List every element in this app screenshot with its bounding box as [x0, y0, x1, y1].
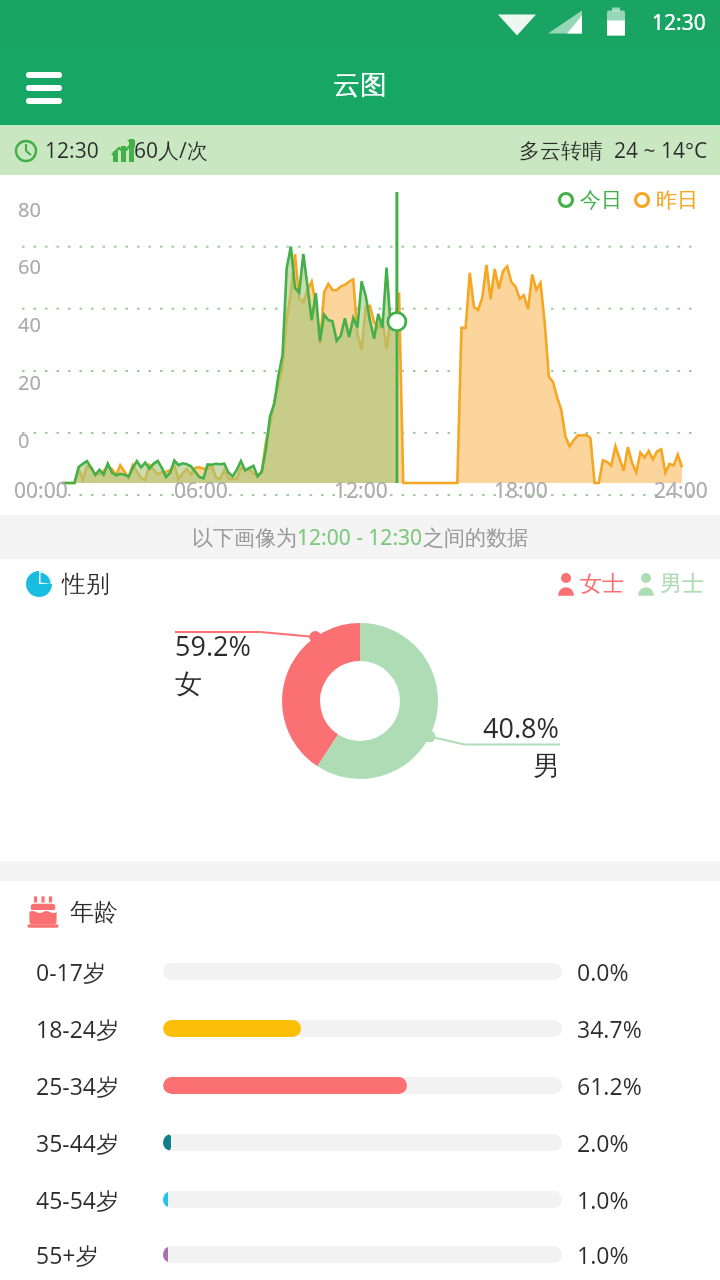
button[interactable]: 55+岁	[0, 1228, 720, 1280]
staticText: 55+岁	[36, 1239, 99, 1270]
staticText: 女士	[580, 570, 624, 598]
staticText: 2.0%	[577, 1127, 629, 1158]
button[interactable]: 今日	[558, 187, 698, 213]
staticText: 06:00	[174, 476, 228, 505]
staticText: 00:00	[14, 476, 68, 505]
staticText: 80	[18, 196, 41, 223]
staticText: 60人/次	[134, 136, 208, 165]
staticText: 61.2%	[577, 1070, 642, 1101]
staticText: 年龄	[70, 897, 118, 927]
staticText: 40	[18, 311, 41, 338]
staticText: 1.0%	[577, 1239, 629, 1270]
staticText: 女	[175, 667, 202, 701]
button[interactable]: 18-24岁	[0, 1000, 720, 1057]
staticText: 多云转晴 24 ~ 14°C	[519, 136, 708, 165]
staticText: 20	[18, 369, 41, 396]
staticText: 18:00	[494, 476, 548, 505]
staticText: 12:00	[334, 476, 388, 505]
staticText: 性别	[62, 569, 110, 599]
button[interactable]: 45-54岁	[0, 1171, 720, 1228]
button[interactable]: 35-44岁	[0, 1114, 720, 1171]
staticText: 12:30	[652, 8, 706, 37]
staticText: 40.8%	[483, 709, 560, 746]
staticText: 男	[533, 749, 560, 783]
staticText: 60	[18, 253, 41, 280]
staticText: 25-34岁	[36, 1070, 120, 1101]
staticText: 0	[18, 427, 30, 454]
staticText: 云图	[333, 68, 387, 102]
staticText: 之间的数据	[423, 525, 528, 551]
button[interactable]: Menu	[24, 59, 76, 111]
button[interactable]: 女士	[554, 570, 704, 598]
staticText: 今日	[580, 187, 622, 213]
button[interactable]: 0-17岁	[0, 943, 720, 1000]
staticText: 男士	[660, 570, 704, 598]
staticText: 1.0%	[577, 1184, 629, 1215]
staticText: 12:30	[45, 136, 99, 165]
staticText: 18-24岁	[36, 1013, 120, 1044]
staticText: 0-17岁	[36, 956, 106, 987]
staticText: 34.7%	[577, 1013, 642, 1044]
staticText: 以下画像为	[192, 525, 297, 551]
staticText: 35-44岁	[36, 1127, 120, 1158]
staticText: 24:00	[654, 476, 708, 505]
button[interactable]: 25-34岁	[0, 1057, 720, 1114]
staticText: 0.0%	[577, 956, 629, 987]
staticText: 59.2%	[175, 627, 252, 664]
staticText: 45-54岁	[36, 1184, 120, 1215]
staticText: 昨日	[656, 187, 698, 213]
staticText: 12:00 - 12:30	[297, 523, 423, 552]
